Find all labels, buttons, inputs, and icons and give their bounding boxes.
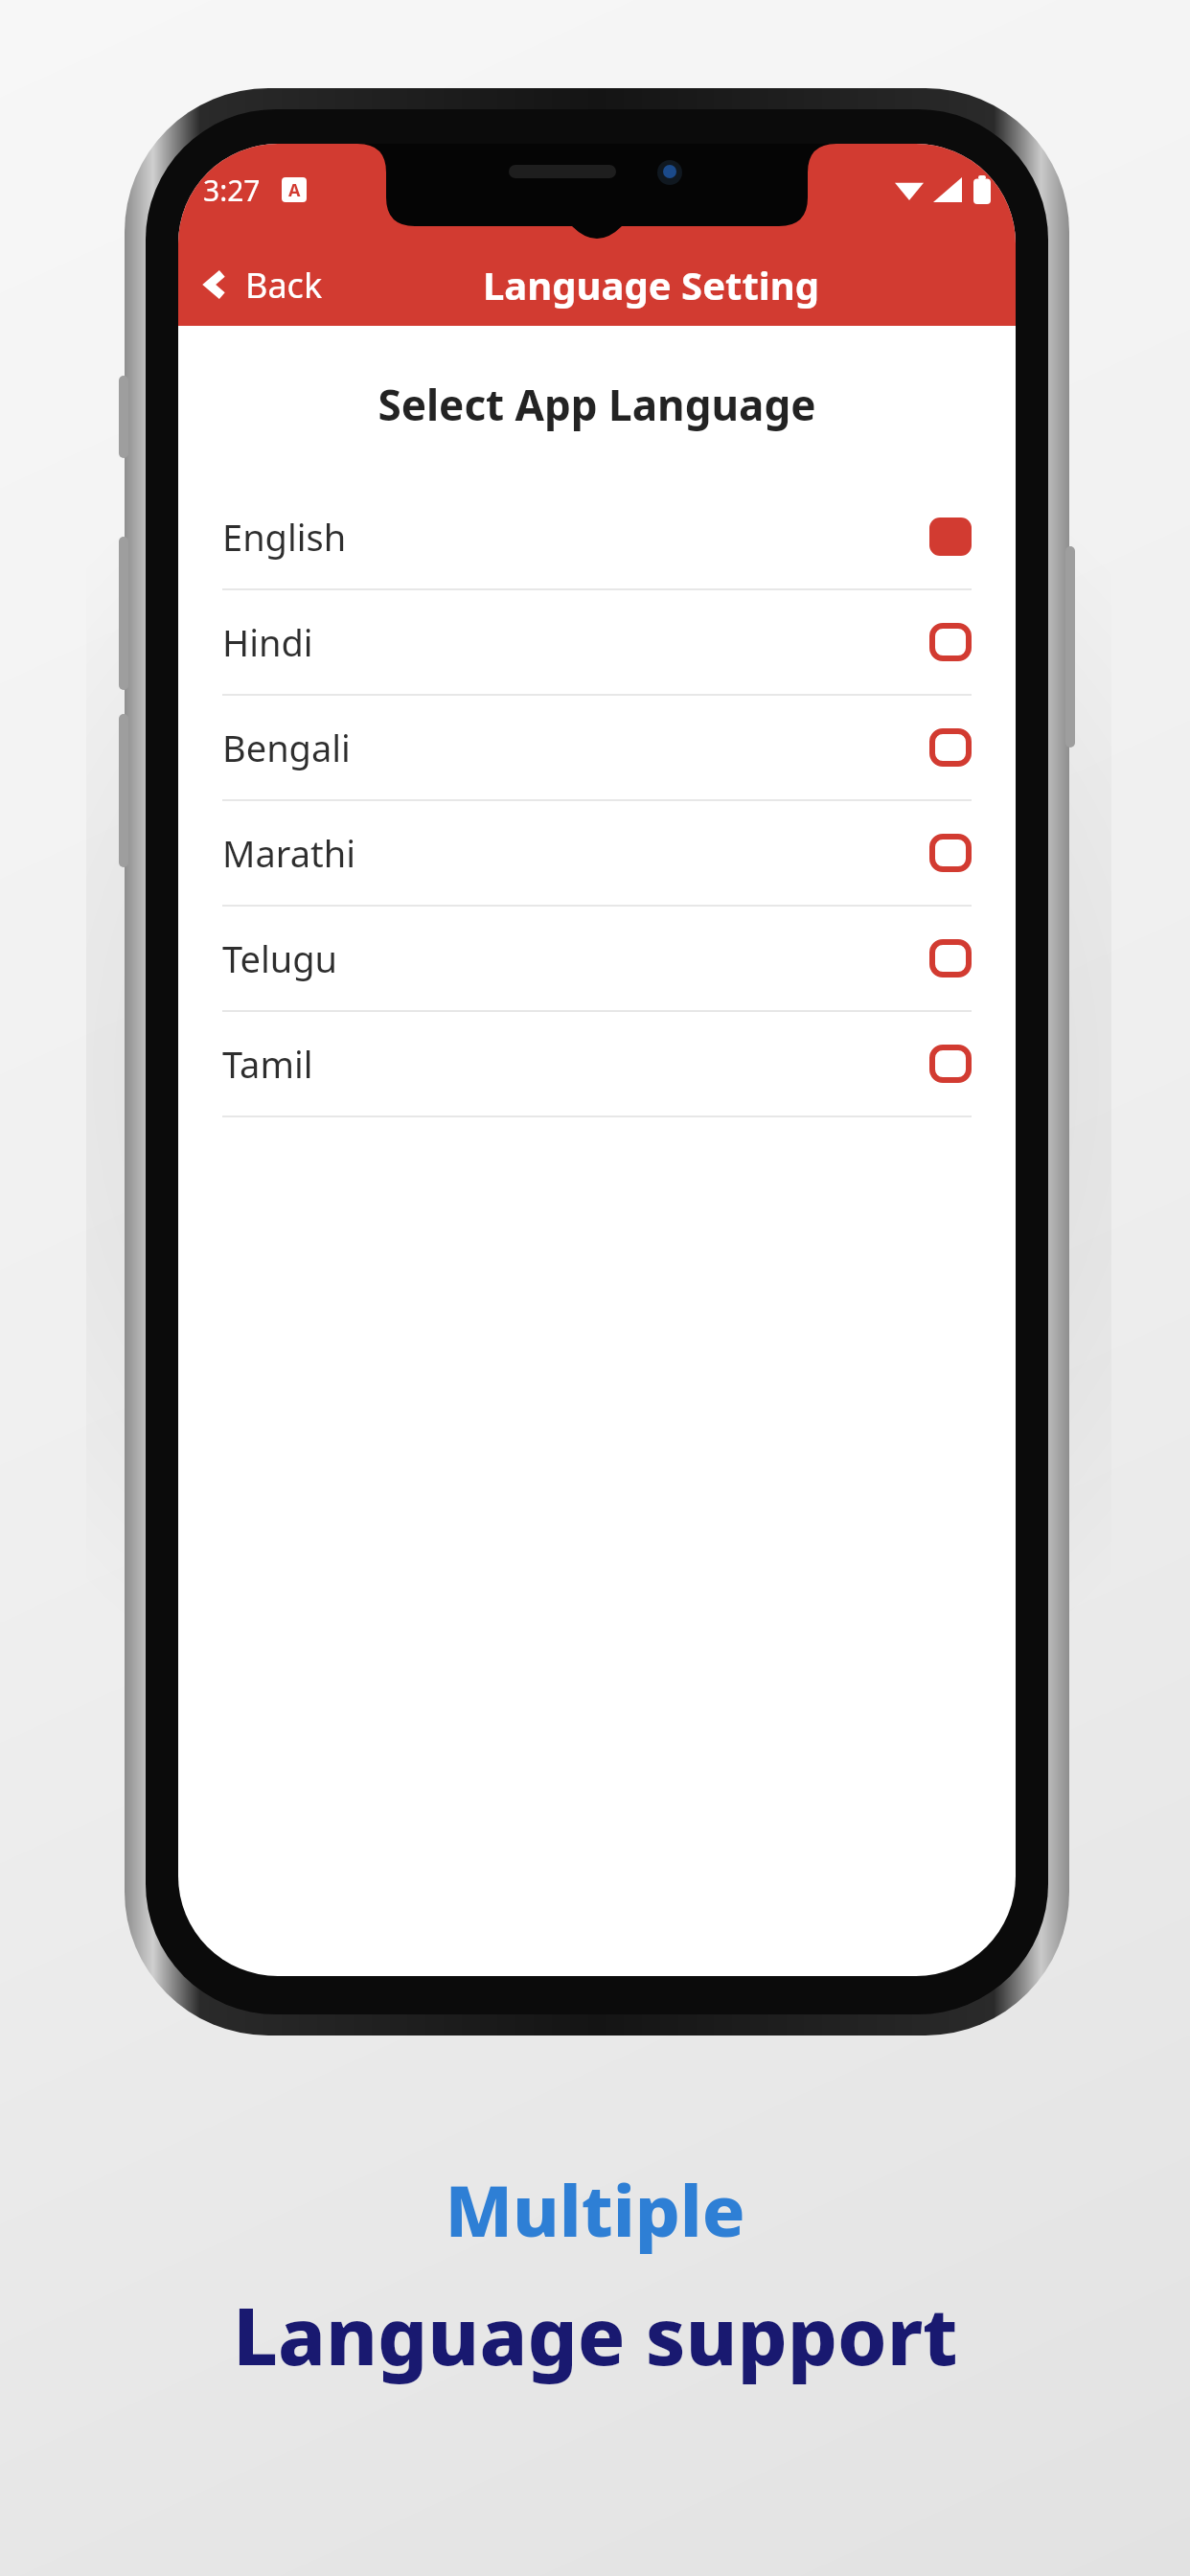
staticText: Tamil <box>222 1039 313 1089</box>
staticText: Back <box>245 262 323 309</box>
staticText: Marathi <box>222 828 356 878</box>
button[interactable]: Back <box>178 243 338 326</box>
button[interactable]: Tamil <box>178 1012 1016 1117</box>
button[interactable]: Bengali <box>178 696 1016 801</box>
staticText: English <box>222 512 347 562</box>
button[interactable]: Marathi <box>178 801 1016 907</box>
staticText: Language support <box>233 2281 958 2388</box>
staticText: 3:27 <box>203 171 261 210</box>
staticText: Language Setting <box>483 259 819 310</box>
button[interactable]: English <box>178 485 1016 590</box>
staticText: Telugu <box>222 933 338 983</box>
staticText: Bengali <box>222 723 351 772</box>
button[interactable]: Hindi <box>178 590 1016 696</box>
button[interactable]: Telugu <box>178 907 1016 1012</box>
staticText: Select App Language <box>178 376 1016 433</box>
staticText: A <box>288 178 301 202</box>
staticText: Multiple <box>445 2161 745 2258</box>
staticText: Hindi <box>222 617 313 667</box>
